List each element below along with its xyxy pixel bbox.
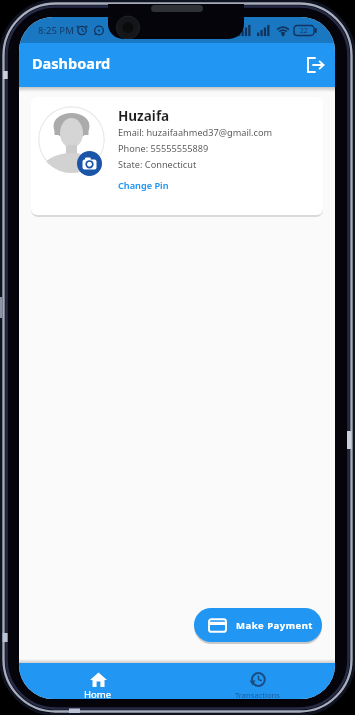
button[interactable]: [300, 49, 332, 81]
staticText: Email: huzaifaahmed37@gmail.com: [118, 126, 273, 139]
staticText: Huzaifa: [118, 107, 170, 125]
button[interactable]: Transactions: [222, 663, 292, 699]
staticText: Transactions: [235, 690, 280, 699]
button[interactable]: Change Pin: [118, 179, 169, 192]
staticText: Dashboard: [32, 53, 111, 73]
staticText: Home: [84, 688, 112, 699]
staticText: Make Payment: [236, 619, 313, 632]
staticText: State: Connecticut: [118, 158, 197, 171]
staticText: 22: [300, 26, 308, 35]
button[interactable]: [77, 151, 102, 176]
button[interactable]: Home: [68, 663, 128, 699]
staticText: Phone: 55555555889: [118, 142, 209, 155]
staticText: Change Pin: [118, 179, 169, 192]
staticText: 8:25 PM: [38, 24, 74, 37]
button[interactable]: Make Payment: [194, 608, 322, 642]
